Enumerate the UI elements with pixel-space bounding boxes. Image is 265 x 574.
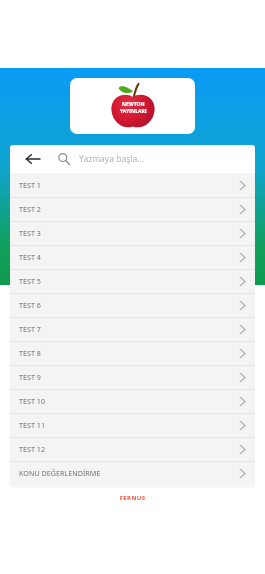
staticText: TEST 6 [19,300,41,310]
staticText: TEST 4 [19,252,41,262]
staticText: FERNUS [0,494,265,502]
button[interactable]: TEST 4 [10,245,255,269]
staticText: TEST 10 [19,396,46,406]
button[interactable]: TEST 7 [10,317,255,341]
button[interactable]: TEST 11 [10,413,255,437]
staticText: TEST 1 [19,180,41,190]
button[interactable]: TEST 12 [10,437,255,461]
button[interactable]: KONU DEĞERLENDİRME [10,461,255,485]
staticText: TEST 11 [19,420,46,430]
staticText: YAYINLARI [120,108,147,115]
button[interactable]: TEST 5 [10,269,255,293]
staticText: TEST 7 [19,324,41,334]
button[interactable]: TEST 10 [10,389,255,413]
staticText: TEST 12 [19,444,46,454]
button[interactable]: Search [55,150,73,168]
button[interactable]: TEST 3 [10,221,255,245]
button[interactable]: TEST 6 [10,293,255,317]
button[interactable]: TEST 8 [10,341,255,365]
button[interactable]: TEST 9 [10,365,255,389]
button[interactable]: TEST 1 [10,173,255,197]
staticText: Yazmaya başla... [79,153,145,165]
staticText: TEST 5 [19,276,41,286]
staticText: TEST 9 [19,372,41,382]
staticText: NEWTON [122,101,145,108]
staticText: KONU DEĞERLENDİRME [19,468,101,478]
staticText: TEST 8 [19,348,41,358]
button[interactable]: TEST 2 [10,197,255,221]
staticText: TEST 2 [19,204,41,214]
staticText: TEST 3 [19,228,41,238]
button[interactable]: Back [23,149,43,169]
